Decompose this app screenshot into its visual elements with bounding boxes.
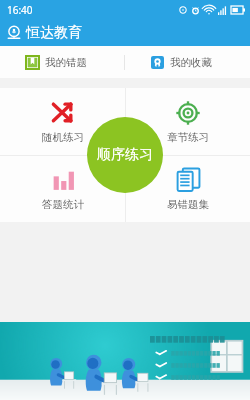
button[interactable]: 答题统计 [0, 155, 125, 222]
button[interactable]: Banner [0, 322, 250, 400]
button[interactable]: 我的错题 [0, 46, 124, 78]
staticText: 易错题集 [167, 198, 209, 211]
staticText: 章节练习 [167, 131, 209, 144]
button[interactable]: 顺序练习 [87, 117, 163, 193]
button[interactable]: 随机练习 [0, 88, 125, 155]
button[interactable]: 易错题集 [125, 155, 250, 222]
staticText: 随机练习 [42, 131, 84, 144]
button[interactable]: 章节练习 [125, 88, 250, 155]
staticText: 我的错题 [45, 56, 87, 69]
staticText: 16:40 [7, 3, 33, 17]
staticText: 我的收藏 [170, 56, 212, 69]
button[interactable]: 我的收藏 [125, 46, 250, 78]
staticText: 顺序练习 [97, 146, 153, 164]
staticText: 答题统计 [42, 198, 84, 211]
staticText: 恒达教育 [26, 24, 82, 42]
other: Logo [6, 25, 22, 41]
